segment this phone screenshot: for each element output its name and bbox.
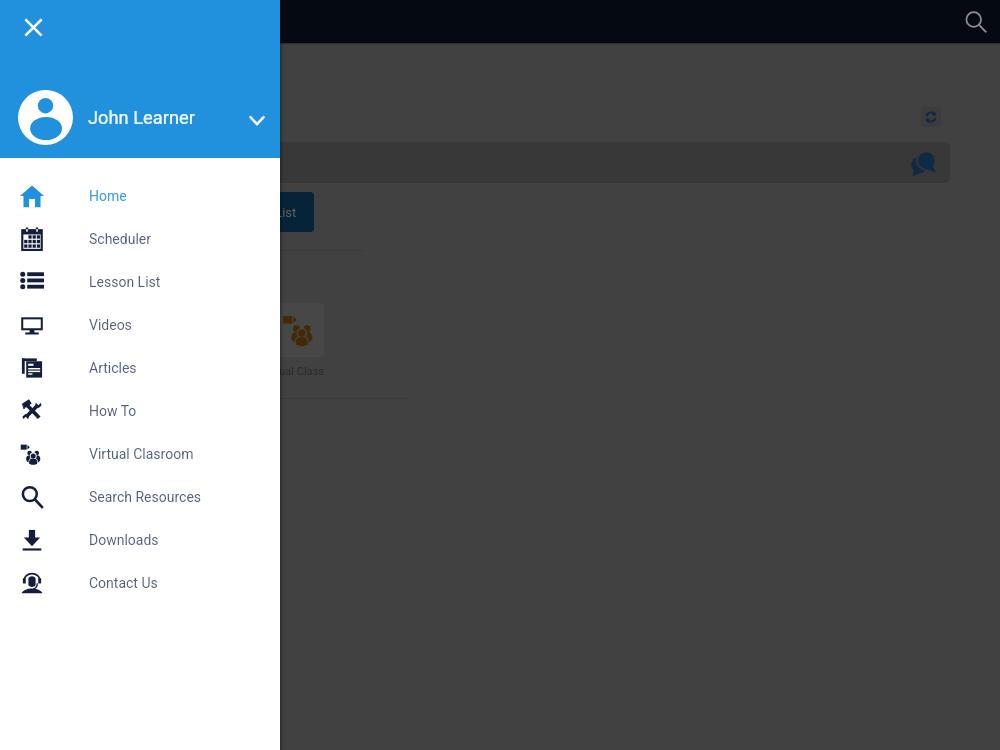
button[interactable]: Virtual Clasroom [0, 432, 280, 475]
button[interactable]: How To [0, 389, 280, 432]
button[interactable]: John Learner [0, 89, 280, 145]
button[interactable]: Chat [0, 142, 950, 183]
staticText: Virtual Clasroom [89, 446, 194, 462]
button[interactable]: Virtual Class [276, 303, 324, 357]
staticText: Scheduler [89, 231, 151, 247]
staticText: Search Resources [89, 489, 202, 505]
staticText: Contact Us [89, 575, 158, 591]
button[interactable]: Scheduler [0, 217, 280, 260]
button[interactable]: Refresh [921, 107, 941, 127]
button[interactable]: Lesson List [0, 260, 280, 303]
button[interactable]: Close navigation drawer [18, 12, 48, 42]
button[interactable]: Videos [0, 303, 280, 346]
button[interactable]: Lesson List [212, 192, 314, 232]
button[interactable]: Chat [908, 146, 942, 180]
staticText: Home [89, 188, 127, 204]
button[interactable]: Contact Us [0, 561, 280, 604]
staticText: Videos [89, 317, 132, 333]
button[interactable]: Articles [0, 346, 280, 389]
staticText: How To [89, 403, 137, 419]
staticText: Downloads [89, 532, 159, 548]
staticText: Lesson List [230, 205, 297, 220]
button[interactable]: Home [0, 174, 280, 217]
staticText: Lesson List [89, 274, 161, 290]
staticText: Virtual Class [262, 365, 324, 378]
staticText: John Learner [88, 107, 195, 128]
button[interactable]: Search [958, 4, 994, 40]
button[interactable]: Downloads [0, 518, 280, 561]
staticText: Articles [89, 360, 137, 376]
button[interactable]: Search Resources [0, 475, 280, 518]
